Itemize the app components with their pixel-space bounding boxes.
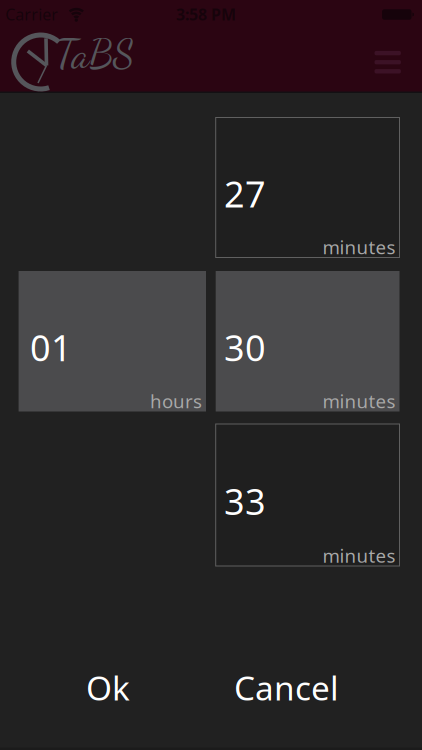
button[interactable]: 27 — [216, 117, 399, 257]
button[interactable]: Cancel — [224, 659, 349, 716]
button[interactable]: Ok — [76, 659, 140, 716]
staticText: hours — [150, 389, 202, 413]
staticText: TaBS — [56, 30, 134, 78]
staticText: 30 — [224, 323, 266, 371]
staticText: 27 — [224, 170, 266, 217]
staticText: 01 — [30, 323, 72, 371]
staticText: Cancel — [234, 665, 339, 710]
staticText: 33 — [224, 477, 266, 525]
button[interactable]: 30 — [216, 271, 399, 411]
button[interactable]: 01 — [19, 271, 206, 411]
staticText: 3:58 PM — [176, 4, 236, 25]
button[interactable]: 33 — [216, 424, 399, 566]
button[interactable]: Menu — [367, 43, 409, 81]
staticText: Ok — [86, 665, 130, 710]
staticText: minutes — [322, 543, 395, 568]
staticText: minutes — [322, 389, 395, 413]
staticText: Carrier — [5, 4, 58, 25]
staticText: minutes — [322, 235, 395, 259]
